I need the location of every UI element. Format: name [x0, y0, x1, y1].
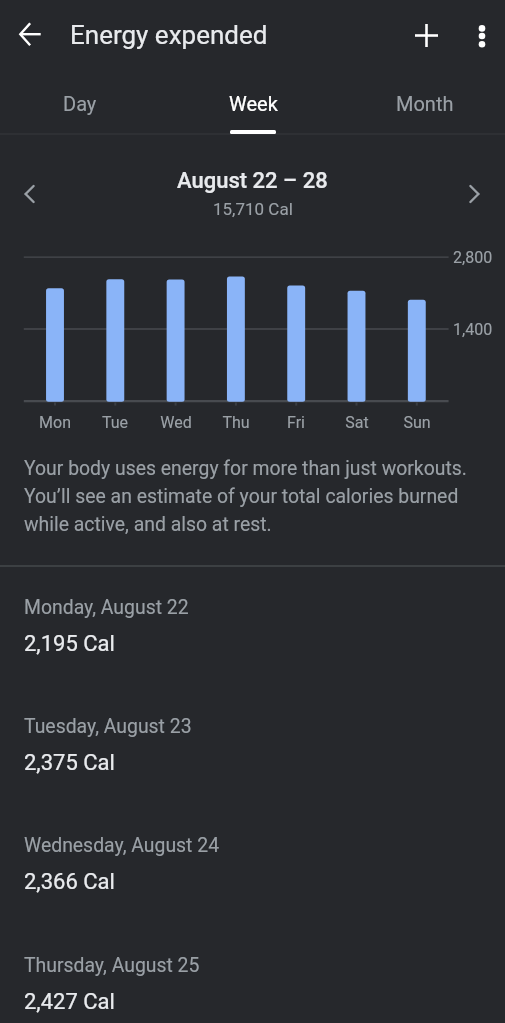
staticText: Sun: [387, 413, 447, 432]
staticText: Thursday, August 25: [24, 954, 200, 977]
staticText: Week: [229, 92, 278, 115]
button[interactable]: Day: [0, 70, 164, 140]
button[interactable]: Thursday, August 25: [0, 930, 505, 1023]
staticText: Month: [396, 92, 454, 115]
staticText: 15,710 Cal: [213, 199, 293, 219]
staticText: Sat: [327, 413, 387, 432]
staticText: Monday, August 22: [24, 596, 189, 619]
staticText: Fri: [266, 413, 326, 432]
staticText: 2,195 Cal: [24, 631, 115, 657]
staticText: 2,800: [453, 248, 493, 267]
button[interactable]: Next week: [452, 172, 496, 216]
button[interactable]: Back: [6, 10, 54, 58]
staticText: Energy expended: [70, 20, 268, 50]
button[interactable]: More options: [458, 11, 505, 59]
staticText: Mon: [25, 413, 85, 432]
staticText: Wed: [146, 413, 206, 432]
staticText: 2,375 Cal: [24, 750, 115, 776]
staticText: Your body uses energy for more than just…: [24, 457, 472, 536]
button[interactable]: Previous week: [8, 172, 52, 216]
staticText: Tue: [85, 413, 145, 432]
button[interactable]: Add: [402, 11, 450, 59]
staticText: Tuesday, August 23: [24, 715, 192, 738]
button[interactable]: Week: [169, 70, 337, 140]
button[interactable]: Monday, August 22: [0, 572, 505, 691]
staticText: 2,427 Cal: [24, 989, 115, 1015]
staticText: 2,366 Cal: [24, 869, 115, 895]
button[interactable]: Tuesday, August 23: [0, 691, 505, 810]
button[interactable]: Wednesday, August 24: [0, 810, 505, 929]
staticText: Day: [63, 92, 97, 115]
staticText: August 22 – 28: [177, 168, 328, 194]
button[interactable]: Month: [341, 70, 505, 140]
staticText: Wednesday, August 24: [24, 834, 220, 857]
staticText: Thu: [206, 413, 266, 432]
staticText: 1,400: [453, 320, 493, 339]
